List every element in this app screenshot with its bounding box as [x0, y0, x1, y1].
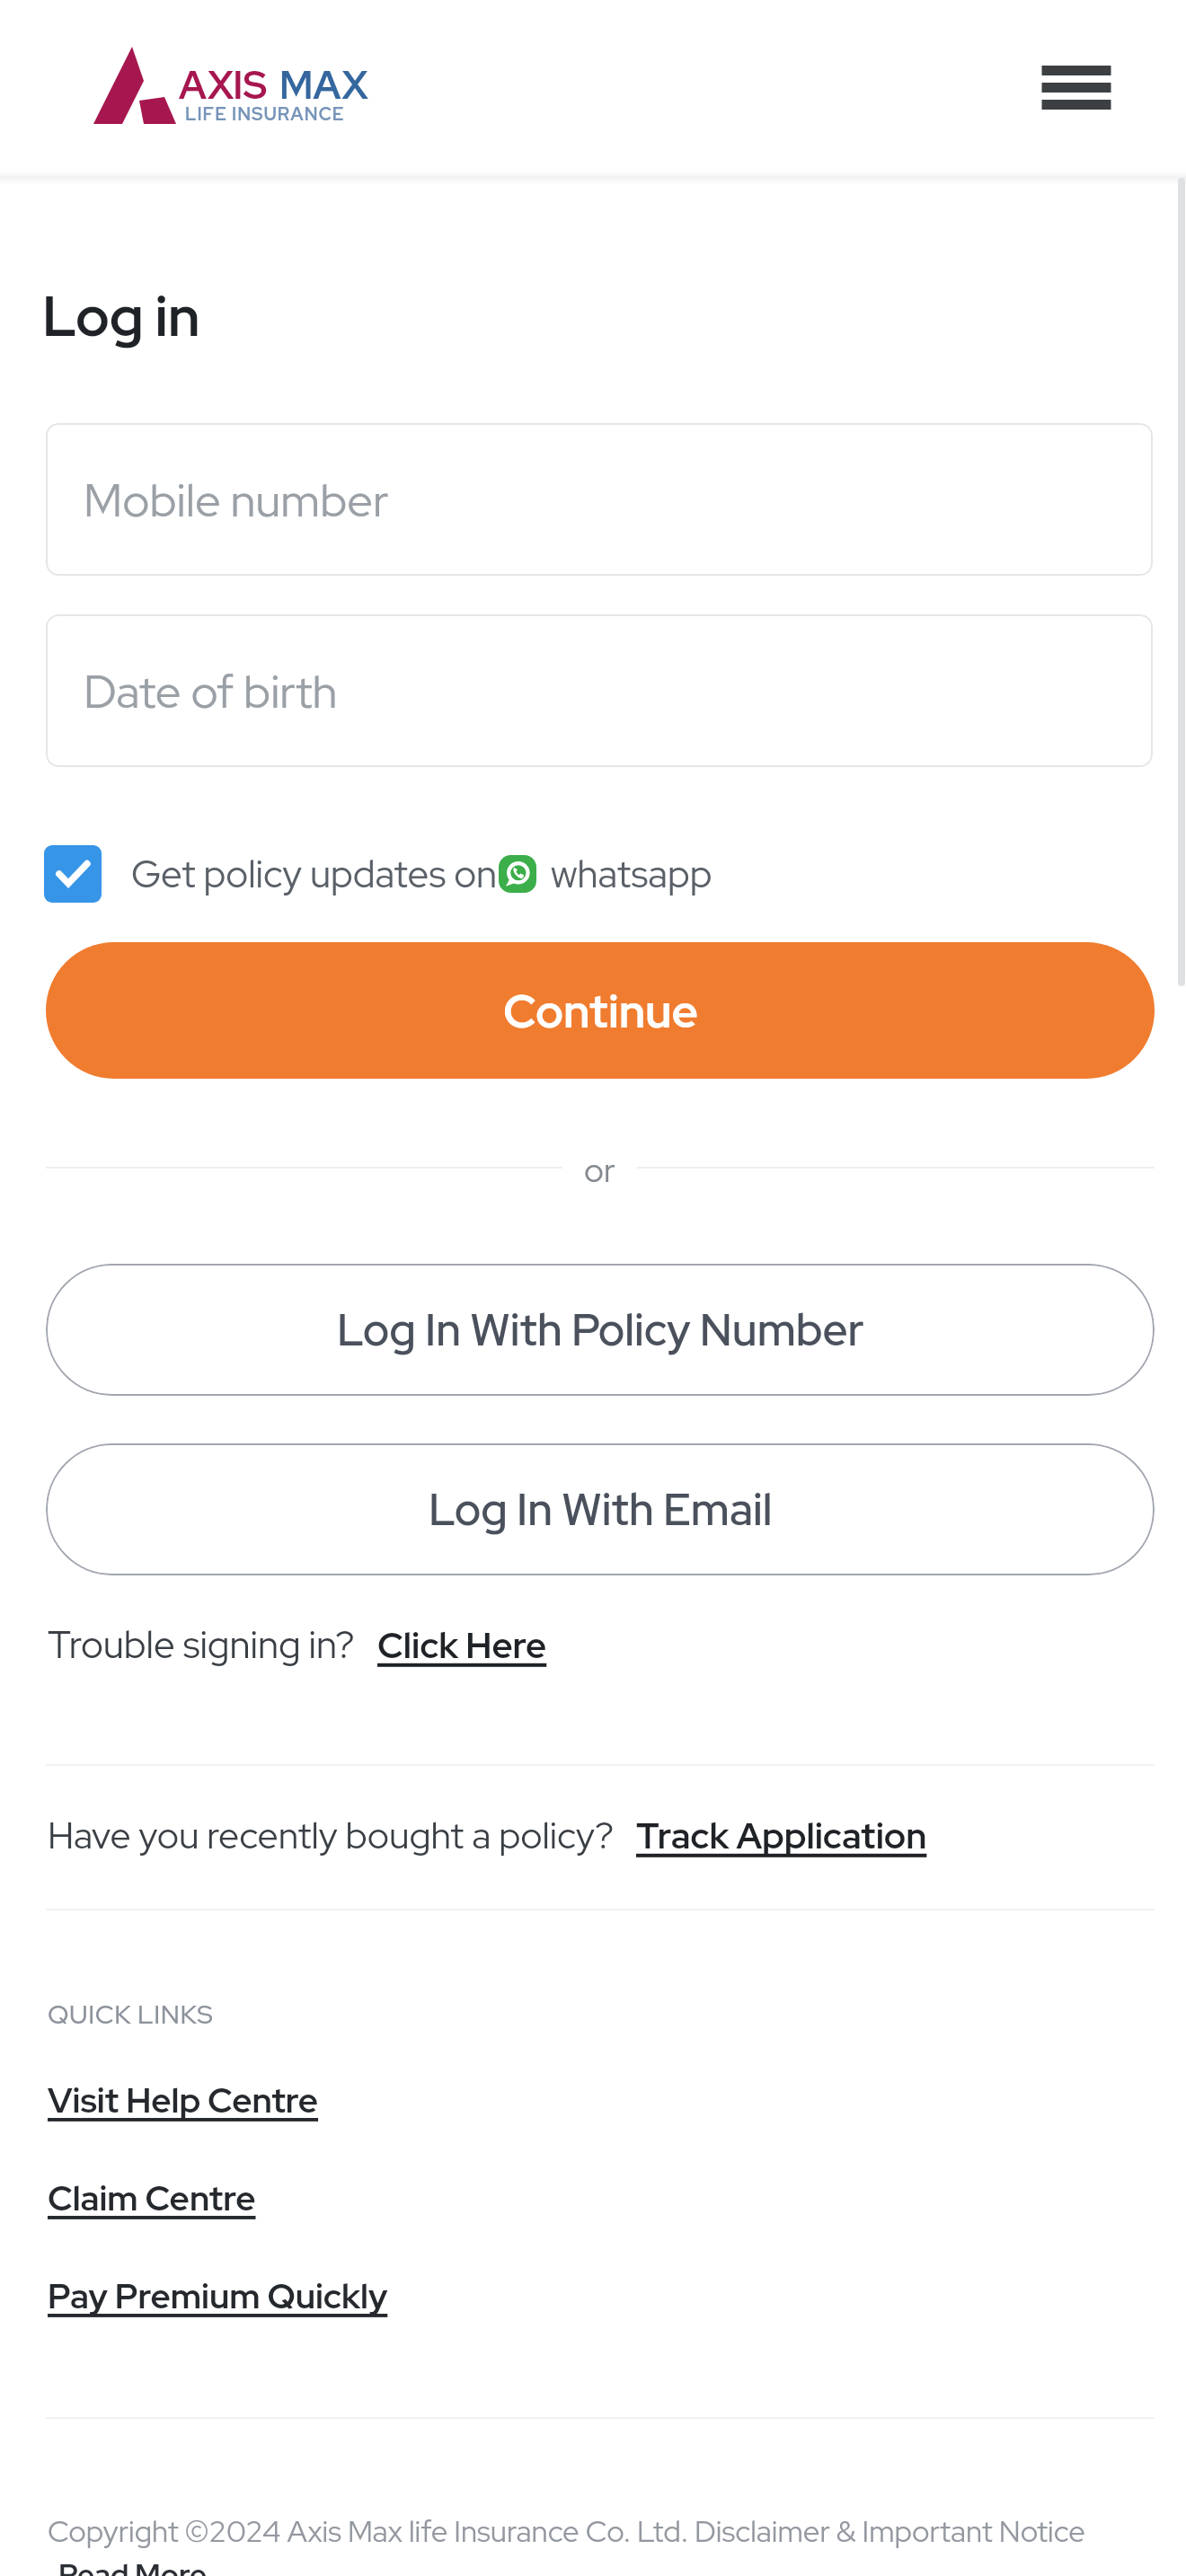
button[interactable]: Open navigation menu	[1031, 44, 1121, 130]
button[interactable]: Track Application	[636, 1812, 927, 1859]
staticText: Have you recently bought a policy?	[48, 1811, 614, 1859]
staticText: Log In With Email	[429, 1480, 773, 1539]
button[interactable]: Log In With Email	[46, 1443, 1155, 1575]
staticText: Track Application	[636, 1812, 927, 1859]
button[interactable]: Pay Premium Quickly	[48, 2273, 388, 2319]
staticText: Trouble signing in?	[48, 1619, 355, 1670]
button[interactable]: Date of birth	[46, 614, 1153, 767]
staticText: Get policy updates on	[131, 849, 498, 899]
staticText: Log in	[42, 279, 200, 353]
staticText: Click Here	[377, 1621, 547, 1669]
button[interactable]: Get policy updates on	[44, 845, 712, 903]
button[interactable]: Click Here	[377, 1621, 547, 1669]
button[interactable]: Claim Centre	[48, 2175, 256, 2221]
staticText: Continue	[503, 981, 698, 1041]
staticText: QUICK LINKS	[48, 1997, 214, 2031]
staticText: AXIS	[179, 59, 268, 110]
staticText: Claim Centre	[48, 2175, 256, 2221]
button[interactable]: Mobile number	[46, 423, 1153, 576]
staticText: whatsapp	[551, 849, 712, 899]
button[interactable]: Log In With Policy Number	[46, 1264, 1155, 1396]
button[interactable]: Visit Help Centre	[48, 2078, 319, 2123]
staticText: Copyright ©2024 Axis Max life Insurance …	[48, 2511, 1085, 2551]
staticText: MAX	[279, 59, 368, 110]
staticText: Visit Help Centre	[48, 2078, 319, 2123]
staticText: or	[584, 1148, 615, 1187]
staticText: Date of birth	[84, 661, 338, 721]
staticText: Read More	[58, 2554, 208, 2576]
staticText: LIFE INSURANCE	[185, 102, 345, 126]
staticText: Pay Premium Quickly	[48, 2273, 388, 2319]
button[interactable]: Read More	[58, 2554, 208, 2576]
staticText: Mobile number	[84, 470, 389, 530]
button[interactable]: Continue	[46, 942, 1155, 1079]
staticText: Log In With Policy Number	[337, 1301, 864, 1359]
button[interactable]: Axis Max Life Insurance home	[93, 45, 381, 126]
